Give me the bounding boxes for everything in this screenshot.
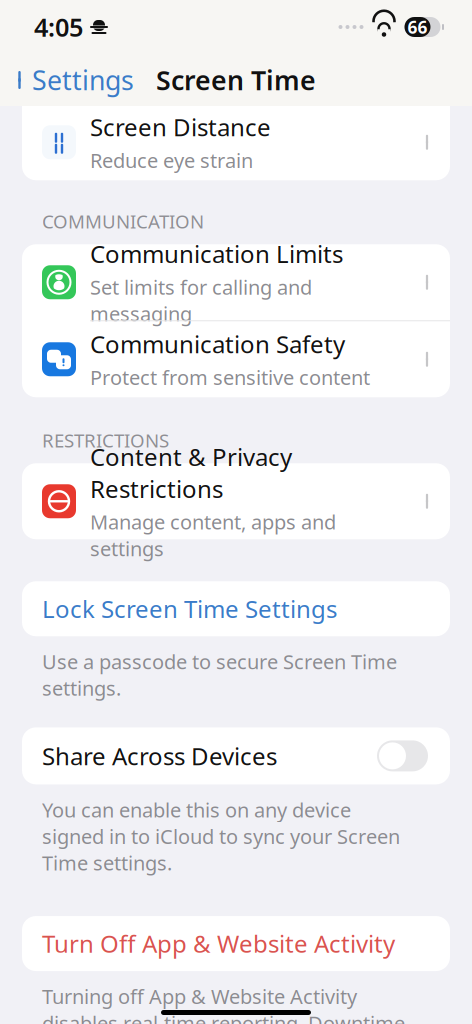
staticText: Manage content, apps and settings bbox=[90, 509, 336, 562]
button[interactable]: Communication Safety bbox=[22, 321, 450, 397]
staticText: COMMUNICATION bbox=[42, 209, 204, 234]
staticText: Screen Time bbox=[156, 62, 316, 98]
staticText: Turn Off App & Website Activity bbox=[42, 928, 395, 959]
staticText: Set limits for calling and messaging bbox=[90, 274, 312, 327]
staticText: 66 bbox=[407, 15, 427, 38]
staticText: Screen Distance bbox=[90, 111, 271, 143]
button[interactable]: Screen Distance bbox=[22, 104, 450, 180]
staticText: Share Across Devices bbox=[42, 740, 277, 772]
staticText: 4:05 bbox=[34, 10, 83, 44]
staticText: Content & Privacy Restrictions bbox=[90, 441, 292, 504]
staticText: You can enable this on any device signed… bbox=[42, 796, 400, 876]
button[interactable]: Communication Limits bbox=[22, 244, 450, 320]
staticText: Reduce eye strain bbox=[90, 147, 253, 173]
staticText: Communication Safety bbox=[90, 328, 345, 360]
button[interactable]: Settings bbox=[0, 56, 134, 104]
staticText: Lock Screen Time Settings bbox=[42, 593, 337, 625]
staticText: Settings bbox=[32, 62, 134, 98]
button[interactable]: Content & Privacy Restrictions bbox=[22, 463, 450, 539]
staticText: Use a passcode to secure Screen Time set… bbox=[42, 648, 397, 701]
staticText: Choose apps to allow at all times bbox=[90, 68, 394, 95]
button[interactable]: Share Across Devices bbox=[22, 727, 450, 784]
button[interactable]: Lock Screen Time Settings bbox=[22, 581, 450, 636]
staticText: Turning off App & Website Activity disab… bbox=[42, 983, 410, 1024]
staticText: RESTRICTIONS bbox=[42, 428, 169, 453]
staticText: Communication Limits bbox=[90, 238, 343, 270]
button[interactable]: Turn Off App & Website Activity bbox=[22, 916, 450, 971]
staticText: Protect from sensitive content bbox=[90, 364, 370, 390]
